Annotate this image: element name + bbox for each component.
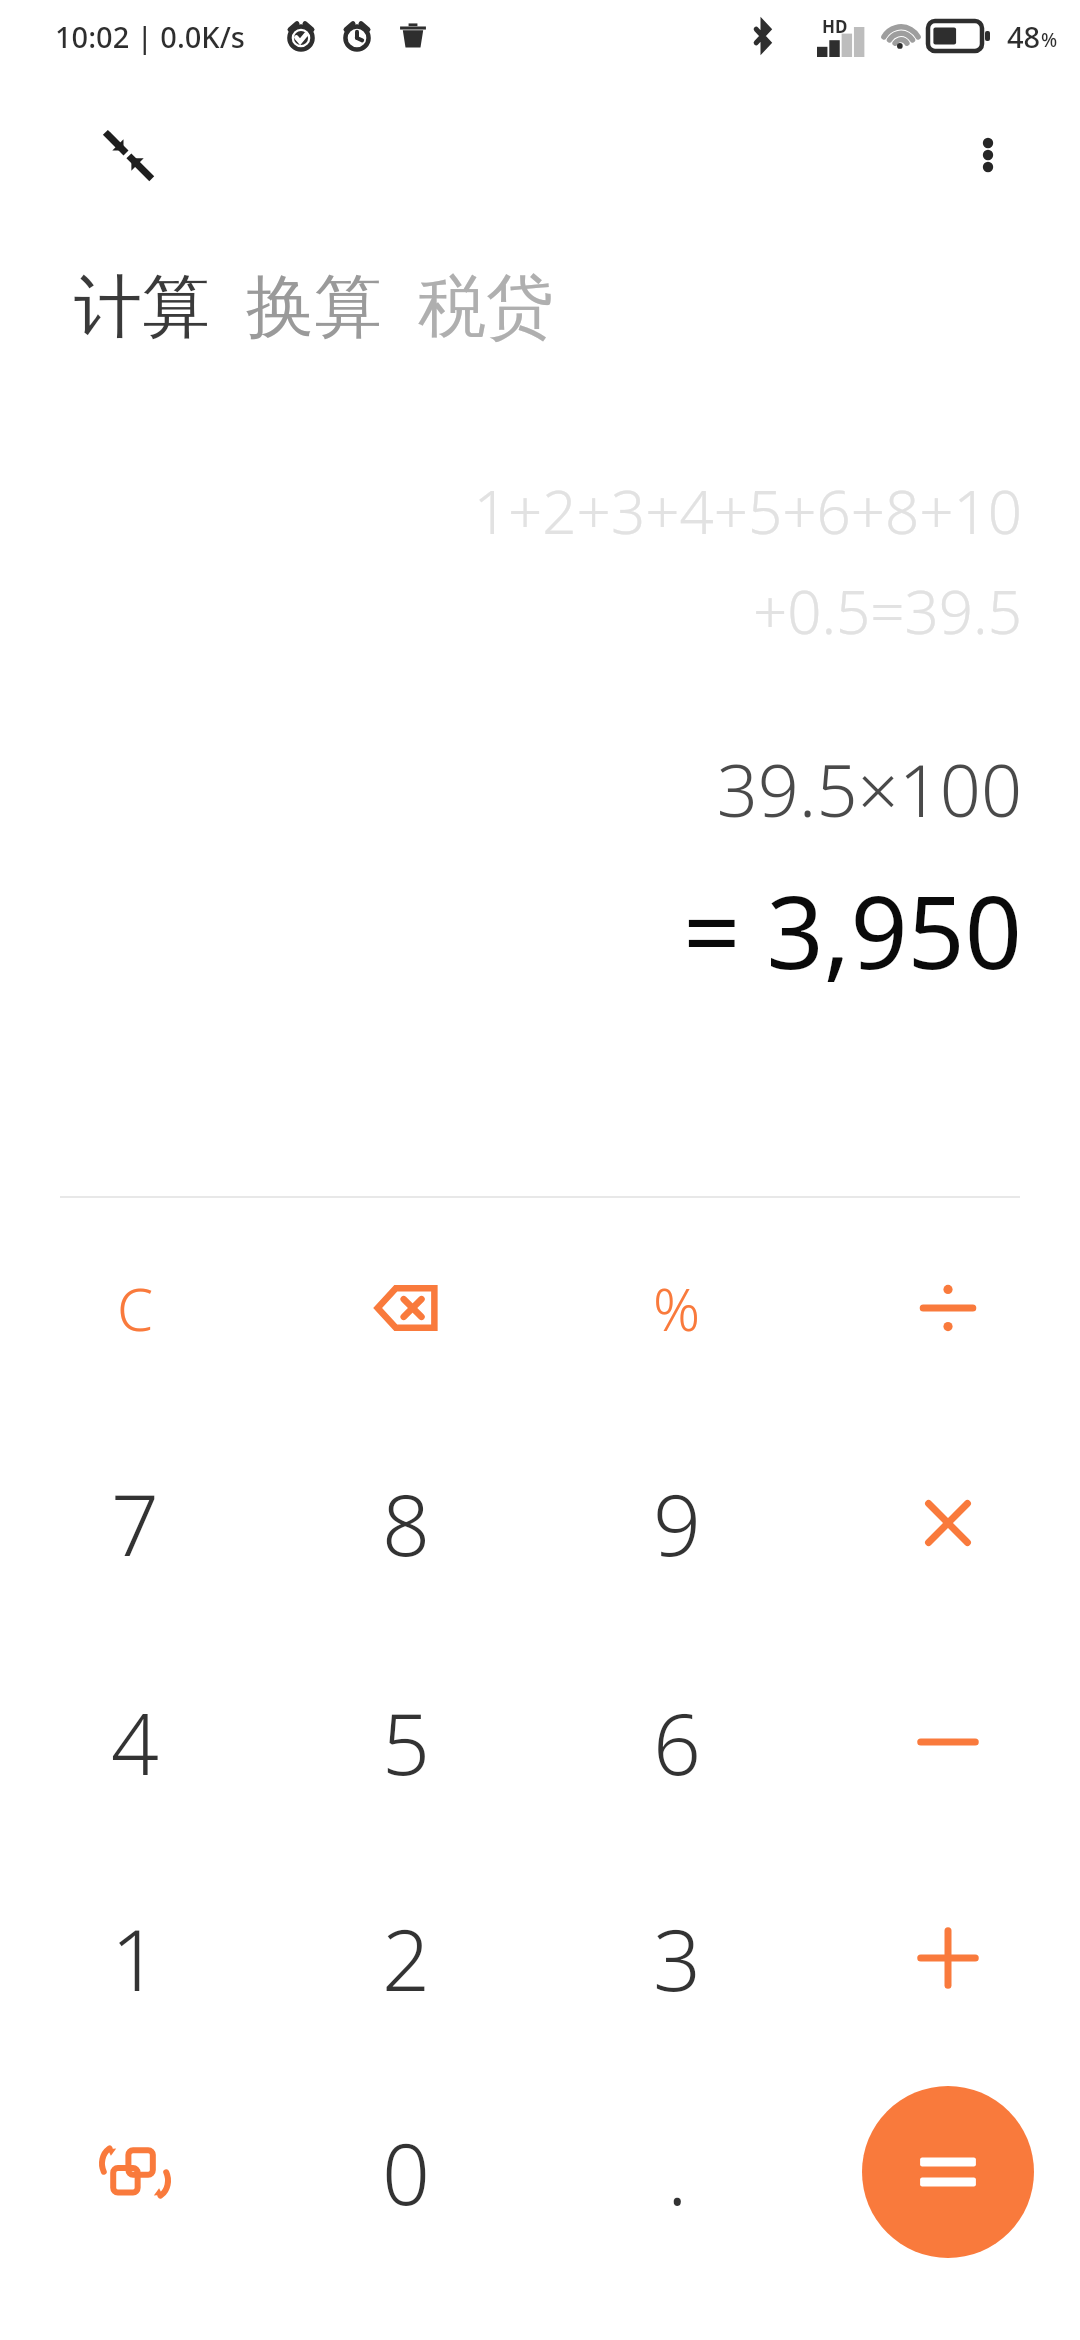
button[interactable]: 1 — [15, 1858, 255, 2058]
staticText: 3 — [653, 1901, 701, 2015]
staticText: 1 — [111, 1901, 159, 2015]
button[interactable]: Multiply — [828, 1423, 1068, 1623]
button[interactable]: 换算 — [242, 257, 386, 359]
button[interactable]: Collapse — [82, 110, 174, 200]
staticText: HD — [822, 15, 848, 38]
button[interactable]: 0 — [286, 2072, 526, 2272]
staticText: 39.5×100 — [716, 740, 1022, 838]
button[interactable]: Backspace — [286, 1208, 526, 1408]
button[interactable]: . — [557, 2072, 797, 2272]
button[interactable]: Percent — [557, 1208, 797, 1408]
button[interactable]: 4 — [15, 1642, 255, 1842]
staticText: 2 — [382, 1901, 430, 2015]
staticText: 10:02 | 0.0K/s — [55, 17, 245, 56]
button[interactable]: 2 — [286, 1858, 526, 2058]
staticText: 0 — [382, 2115, 430, 2229]
button[interactable]: Minus — [828, 1642, 1068, 1842]
button[interactable]: 7 — [15, 1423, 255, 1623]
button[interactable]: Divide — [828, 1208, 1068, 1408]
button[interactable]: More options — [942, 110, 1034, 200]
staticText: +0.5=39.5 — [752, 570, 1022, 652]
button[interactable]: Equals — [862, 2086, 1034, 2258]
staticText: = 3,950 — [683, 862, 1022, 998]
button[interactable]: 3 — [557, 1858, 797, 2058]
staticText: 9 — [653, 1466, 701, 1580]
staticText: . — [667, 2115, 688, 2229]
staticText: % — [653, 1269, 701, 1348]
staticText: 1+2+3+4+5+6+8+10 — [473, 470, 1022, 552]
staticText: 7 — [111, 1466, 159, 1580]
staticText: 5 — [382, 1685, 430, 1799]
button[interactable]: Clear — [15, 1208, 255, 1408]
button[interactable]: 6 — [557, 1642, 797, 1842]
staticText: 48 — [1007, 17, 1041, 56]
staticText: 税贷 — [418, 265, 554, 351]
button[interactable]: Convert — [15, 2072, 255, 2272]
staticText: 计算 — [74, 265, 210, 351]
button[interactable]: 计算 — [70, 257, 214, 359]
staticText: C — [117, 1269, 154, 1348]
button[interactable]: 9 — [557, 1423, 797, 1623]
staticText: % — [1041, 27, 1058, 53]
button[interactable]: Plus — [828, 1858, 1068, 2058]
staticText: 8 — [382, 1466, 430, 1580]
staticText: 换算 — [246, 265, 382, 351]
button[interactable]: 5 — [286, 1642, 526, 1842]
button[interactable]: 8 — [286, 1423, 526, 1623]
staticText: 6 — [653, 1685, 701, 1799]
button[interactable]: 税贷 — [414, 257, 558, 359]
staticText: 4 — [111, 1685, 159, 1799]
